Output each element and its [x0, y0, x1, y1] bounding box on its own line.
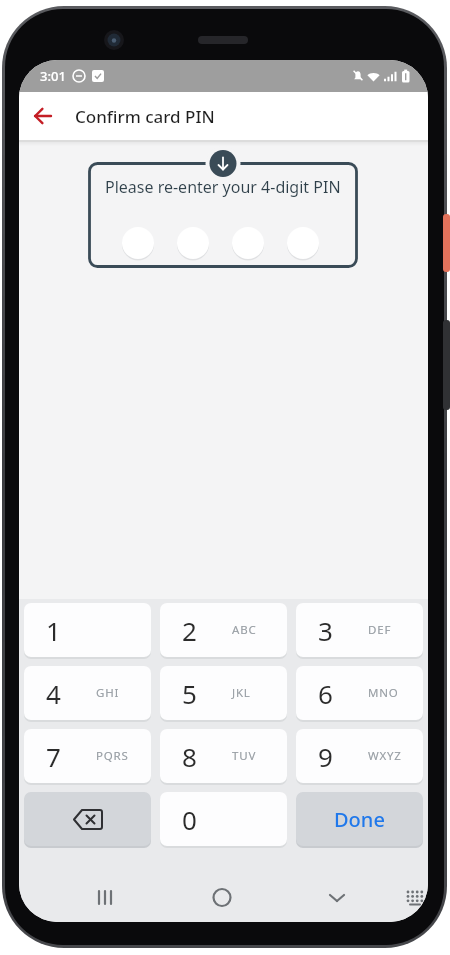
staticText: GHI: [96, 685, 120, 701]
staticText: 4: [46, 676, 61, 711]
staticText: 3: [318, 613, 333, 648]
button[interactable]: 8: [160, 729, 287, 783]
staticText: MNO: [368, 685, 399, 701]
button[interactable]: 0: [160, 792, 287, 846]
staticText: JKL: [232, 685, 251, 701]
staticText: 2: [182, 613, 197, 648]
staticText: Please re-enter your 4-digit PIN: [105, 176, 341, 198]
staticText: ABC: [232, 622, 257, 638]
button[interactable]: 2: [160, 603, 287, 657]
button[interactable]: [24, 792, 151, 846]
staticText: Confirm card PIN: [75, 105, 215, 128]
button[interactable]: Done: [296, 792, 423, 846]
button[interactable]: 5: [160, 666, 287, 720]
staticText: PQRS: [96, 748, 129, 764]
staticText: TUV: [232, 748, 257, 764]
button[interactable]: 6: [296, 666, 423, 720]
staticText: DEF: [368, 622, 392, 638]
button[interactable]: 3: [296, 603, 423, 657]
staticText: 0: [182, 802, 197, 837]
button[interactable]: 9: [296, 729, 423, 783]
staticText: 5: [182, 676, 197, 711]
staticText: WXYZ: [368, 748, 402, 764]
button[interactable]: 1: [24, 603, 151, 657]
button[interactable]: [19, 92, 67, 140]
staticText: 6: [318, 676, 333, 711]
staticText: Done: [334, 806, 385, 833]
button[interactable]: 4: [24, 666, 151, 720]
staticText: 1: [46, 613, 61, 648]
staticText: 9: [318, 739, 333, 774]
button[interactable]: 7: [24, 729, 151, 783]
staticText: 7: [46, 739, 61, 774]
staticText: 8: [182, 739, 197, 774]
staticText: 3:01: [40, 67, 66, 85]
